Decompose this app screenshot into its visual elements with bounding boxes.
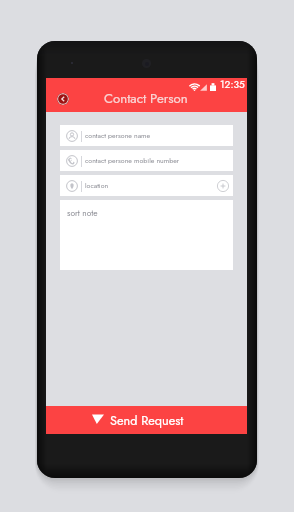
- button[interactable]: Back: [57, 93, 69, 105]
- staticText: Send Request: [110, 411, 184, 429]
- staticText: sort note: [67, 207, 98, 219]
- staticText: 12:35: [220, 77, 245, 92]
- button[interactable]: location: [60, 175, 233, 196]
- staticText: contact persone name: [85, 131, 151, 141]
- button[interactable]: contact persone mobile number: [60, 150, 233, 171]
- staticText: Contact Person: [104, 89, 188, 108]
- staticText: location: [85, 181, 109, 191]
- button[interactable]: contact persone name: [60, 125, 233, 146]
- button[interactable]: sort note: [60, 200, 233, 270]
- button[interactable]: Add location: [217, 180, 229, 192]
- button[interactable]: Send Request: [46, 406, 247, 434]
- staticText: contact persone mobile number: [85, 156, 180, 166]
